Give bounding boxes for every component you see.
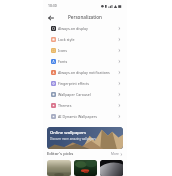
button[interactable]: More bbox=[111, 152, 123, 156]
button[interactable]: Online wallpapers bbox=[47, 127, 123, 149]
staticText: Editor's picks bbox=[47, 151, 74, 157]
staticText: Always-on display notifications bbox=[58, 70, 110, 75]
button[interactable]: Fingerprint effects bbox=[43, 78, 127, 89]
staticText: Lock style bbox=[58, 37, 75, 42]
button[interactable]: Lock style bbox=[43, 34, 127, 45]
staticText: AI Dynamic Wallpapers bbox=[58, 114, 97, 119]
button[interactable]: Icons bbox=[43, 45, 127, 56]
button[interactable]: Themes bbox=[43, 100, 127, 111]
staticText: Wallpaper Carousel bbox=[58, 92, 91, 97]
staticText: Always-on display bbox=[58, 26, 88, 31]
staticText: Fingerprint effects bbox=[58, 81, 90, 86]
staticText: Icons bbox=[58, 48, 68, 53]
staticText: Themes bbox=[58, 103, 72, 108]
button[interactable] bbox=[47, 160, 71, 176]
button[interactable]: Wallpaper Carousel bbox=[43, 89, 127, 100]
button[interactable] bbox=[74, 160, 97, 176]
staticText: More bbox=[111, 152, 119, 156]
button[interactable]: AI Dynamic Wallpapers bbox=[43, 111, 127, 122]
button[interactable] bbox=[100, 160, 123, 176]
staticText: Discover more amazing wallpapers bbox=[50, 137, 96, 141]
staticText: 10:30 bbox=[48, 3, 57, 8]
button[interactable]: Back bbox=[45, 12, 56, 23]
staticText: Fonts bbox=[58, 59, 68, 64]
button[interactable]: Always-on display bbox=[43, 23, 127, 34]
staticText: Online wallpapers bbox=[50, 130, 87, 136]
button[interactable]: Fonts bbox=[43, 56, 127, 67]
button[interactable]: Always-on display notifications bbox=[43, 67, 127, 78]
staticText: Personalization bbox=[68, 14, 102, 20]
